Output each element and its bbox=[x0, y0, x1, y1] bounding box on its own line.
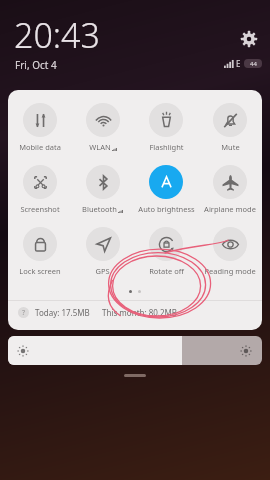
button[interactable]: Settings bbox=[238, 28, 260, 50]
staticText: WLAN bbox=[89, 142, 111, 152]
staticText: Mute bbox=[221, 142, 240, 152]
button[interactable]: Lock screen bbox=[8, 224, 71, 279]
staticText: Airplane mode bbox=[204, 204, 256, 214]
button[interactable]: Reading mode bbox=[198, 224, 262, 279]
staticText: Flashlight bbox=[149, 142, 184, 152]
staticText: Fri, Oct 4 bbox=[15, 58, 57, 72]
button[interactable]: Brightness bbox=[8, 336, 262, 365]
button[interactable]: WLAN bbox=[71, 100, 134, 155]
staticText: This month: 80.2MB bbox=[102, 307, 178, 318]
button[interactable]: Bluetooth bbox=[71, 162, 134, 217]
staticText: Mobile data bbox=[19, 142, 61, 152]
staticText: Today: 17.5MB bbox=[35, 307, 90, 318]
button[interactable]: Mobile data bbox=[8, 100, 71, 155]
staticText: GPS bbox=[95, 266, 110, 276]
staticText: Auto brightness bbox=[138, 204, 195, 214]
staticText: Reading mode bbox=[204, 266, 256, 276]
button[interactable]: ? bbox=[8, 301, 262, 323]
button[interactable]: GPS bbox=[71, 224, 134, 279]
staticText: 44 bbox=[250, 60, 257, 68]
staticText: Lock screen bbox=[19, 266, 61, 276]
button[interactable]: Airplane mode bbox=[198, 162, 262, 217]
button[interactable]: Flashlight bbox=[134, 100, 198, 155]
button[interactable]: Close panel bbox=[124, 374, 146, 377]
staticText: 20:43 bbox=[14, 12, 100, 58]
staticText: Screenshot bbox=[20, 204, 60, 214]
staticText: ? bbox=[22, 308, 26, 318]
button[interactable]: Auto brightness bbox=[134, 162, 198, 217]
button[interactable]: Rotate off bbox=[134, 224, 198, 279]
staticText: Rotate off bbox=[149, 266, 184, 276]
button[interactable]: Mute bbox=[198, 100, 262, 155]
staticText: Bluetooth bbox=[82, 204, 117, 214]
button[interactable]: Screenshot bbox=[8, 162, 71, 217]
staticText: E bbox=[236, 58, 241, 69]
